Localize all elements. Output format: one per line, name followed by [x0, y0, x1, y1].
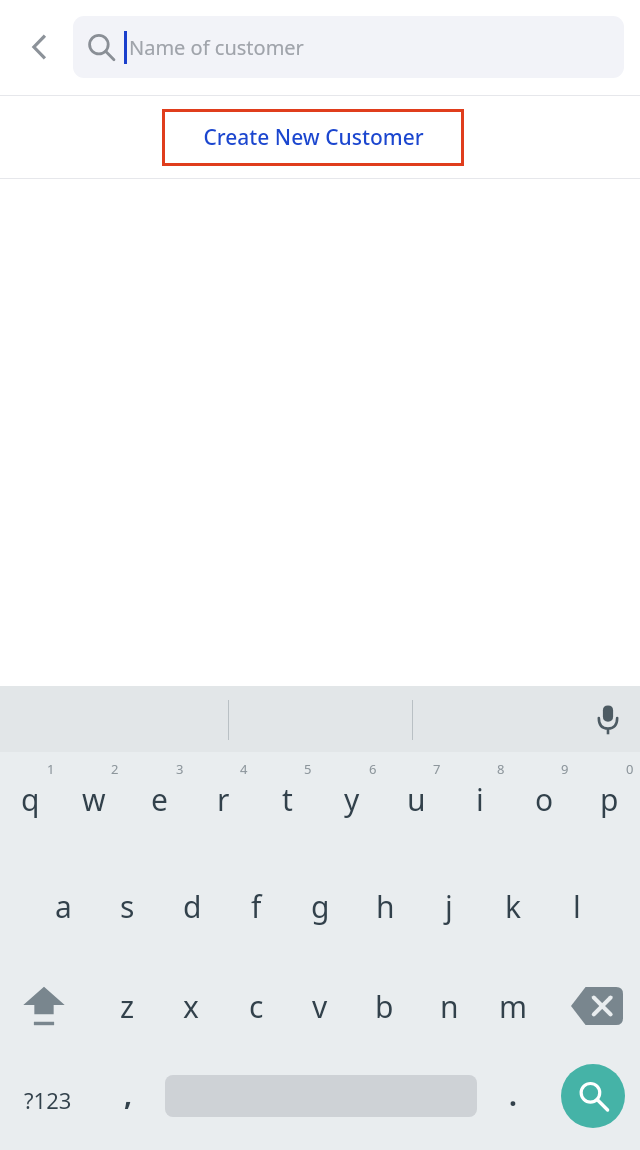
- staticText: m: [499, 986, 528, 1027]
- button[interactable]: Voice input: [578, 689, 638, 749]
- button[interactable]: Create New Customer: [162, 109, 464, 166]
- staticText: 7: [433, 760, 441, 778]
- staticText: n: [440, 986, 459, 1027]
- button[interactable]: 1: [0, 760, 62, 856]
- staticText: e: [151, 779, 168, 820]
- staticText: .: [509, 1076, 517, 1114]
- staticText: b: [375, 986, 394, 1027]
- button[interactable]: f: [224, 864, 288, 948]
- button[interactable]: 5: [255, 760, 319, 856]
- button[interactable]: l: [545, 864, 609, 948]
- staticText: z: [120, 986, 135, 1027]
- staticText: r: [217, 779, 230, 820]
- staticText: 5: [304, 760, 312, 778]
- button[interactable]: k: [481, 864, 545, 948]
- staticText: 2: [111, 760, 119, 778]
- button[interactable]: b: [352, 964, 416, 1048]
- staticText: ,: [124, 1075, 132, 1113]
- button[interactable]: Shift: [6, 964, 82, 1048]
- staticText: o: [535, 779, 554, 820]
- button[interactable]: 7: [384, 760, 448, 856]
- staticText: 1: [47, 760, 55, 778]
- staticText: a: [55, 886, 72, 927]
- button[interactable]: z: [95, 964, 159, 1048]
- staticText: j: [445, 886, 453, 927]
- staticText: u: [407, 779, 426, 820]
- staticText: 8: [497, 760, 505, 778]
- staticText: 9: [561, 760, 569, 778]
- staticText: c: [249, 986, 264, 1027]
- button[interactable]: v: [288, 964, 352, 1048]
- button[interactable]: d: [160, 864, 224, 948]
- staticText: Create New Customer: [203, 123, 424, 152]
- staticText: q: [21, 779, 40, 820]
- staticText: k: [505, 886, 522, 927]
- button[interactable]: ,: [98, 1058, 158, 1142]
- button[interactable]: Name of customer: [73, 16, 624, 78]
- button[interactable]: n: [417, 964, 481, 1048]
- staticText: h: [376, 886, 395, 927]
- button[interactable]: 9: [512, 760, 576, 856]
- button[interactable]: c: [224, 964, 288, 1048]
- button[interactable]: s: [95, 864, 159, 948]
- staticText: d: [183, 886, 202, 927]
- button[interactable]: 4: [191, 760, 255, 856]
- button[interactable]: 3: [127, 760, 191, 856]
- button[interactable]: Search: [561, 1064, 625, 1128]
- staticText: 6: [369, 760, 377, 778]
- staticText: l: [573, 886, 581, 927]
- staticText: ?123: [24, 1085, 72, 1115]
- staticText: p: [600, 779, 619, 820]
- staticText: 3: [176, 760, 184, 778]
- staticText: y: [344, 779, 360, 820]
- staticText: t: [282, 779, 293, 820]
- button[interactable]: g: [288, 864, 352, 948]
- staticText: f: [251, 886, 262, 927]
- button[interactable]: Backspace: [559, 964, 635, 1048]
- staticText: v: [312, 986, 328, 1027]
- button[interactable]: 8: [448, 760, 512, 856]
- staticText: x: [183, 986, 199, 1027]
- button[interactable]: .: [487, 1058, 539, 1142]
- button[interactable]: m: [481, 964, 545, 1048]
- button[interactable]: j: [417, 864, 481, 948]
- staticText: s: [120, 886, 135, 927]
- button[interactable]: 0: [577, 760, 640, 856]
- button[interactable]: a: [31, 864, 95, 948]
- button[interactable]: Back: [10, 18, 68, 76]
- staticText: w: [82, 779, 106, 820]
- button[interactable]: 2: [62, 760, 126, 856]
- button[interactable]: x: [159, 964, 223, 1048]
- button[interactable]: 6: [320, 760, 384, 856]
- staticText: 0: [626, 760, 634, 778]
- button[interactable]: h: [353, 864, 417, 948]
- staticText: Name of customer: [129, 34, 304, 61]
- staticText: g: [311, 886, 330, 927]
- staticText: i: [476, 779, 484, 820]
- staticText: 4: [240, 760, 248, 778]
- button[interactable]: ?123: [6, 1058, 90, 1142]
